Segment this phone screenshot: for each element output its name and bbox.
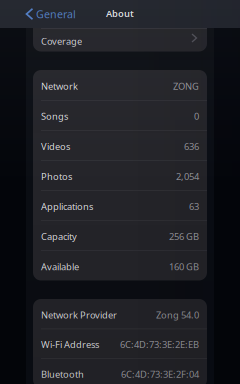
staticText: 0 (194, 110, 199, 122)
staticText: Photos (41, 170, 72, 182)
staticText: Applications (41, 200, 93, 213)
staticText: General (36, 7, 76, 21)
staticText: 6C:4D:73:3E:2F:04 (121, 368, 199, 380)
staticText: ZONG (173, 80, 199, 92)
staticText: Videos (41, 140, 70, 152)
staticText: About (106, 7, 134, 20)
staticText: 160 GB (169, 260, 199, 273)
staticText: 63 (189, 200, 199, 213)
button[interactable]: General (26, 0, 76, 28)
staticText: Network Provider (41, 309, 117, 321)
staticText: Capacity (41, 230, 77, 243)
staticText: 2,054 (176, 170, 199, 182)
staticText: Zong 54.0 (156, 309, 199, 321)
staticText: Songs (41, 110, 68, 122)
staticText: 6C:4D:73:3E:2E:EB (120, 338, 199, 351)
staticText: 636 (184, 140, 199, 152)
staticText: 256 GB (169, 230, 199, 243)
staticText: Bluetooth (41, 368, 84, 380)
button[interactable]: Coverage (33, 11, 207, 51)
staticText: Coverage (41, 35, 82, 47)
staticText: Wi-Fi Address (41, 338, 99, 351)
staticText: Available (41, 260, 79, 273)
staticText: Network (41, 80, 78, 92)
